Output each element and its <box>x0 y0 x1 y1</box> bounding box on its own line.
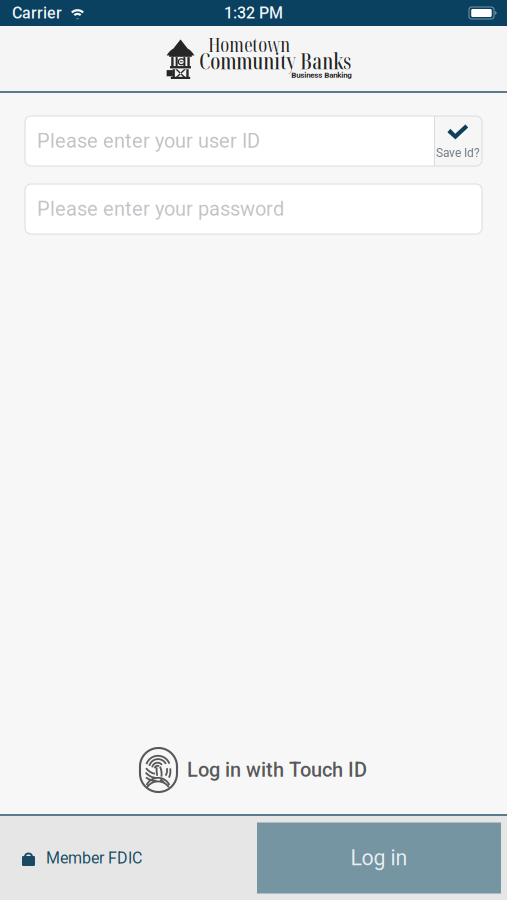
button[interactable]: Log in <box>257 822 501 893</box>
staticText: Please enter your user ID <box>37 129 260 153</box>
staticText: Hometown <box>208 31 290 58</box>
staticText: Carrier <box>12 4 62 22</box>
staticText: Business Banking <box>291 70 352 80</box>
button[interactable]: Please enter your user ID <box>25 116 482 166</box>
button[interactable]: Please enter your password <box>25 184 482 234</box>
button[interactable]: Log in with Touch ID <box>140 748 367 792</box>
staticText: Log in <box>350 845 407 870</box>
button[interactable]: Member FDIC <box>0 816 257 900</box>
staticText: Save Id? <box>436 146 480 160</box>
staticText: Please enter your password <box>37 197 284 221</box>
staticText: Community Banks <box>199 46 351 76</box>
staticText: 1:32 PM <box>224 4 283 22</box>
staticText: Member FDIC <box>46 849 142 867</box>
staticText: Log in with Touch ID <box>187 758 367 782</box>
